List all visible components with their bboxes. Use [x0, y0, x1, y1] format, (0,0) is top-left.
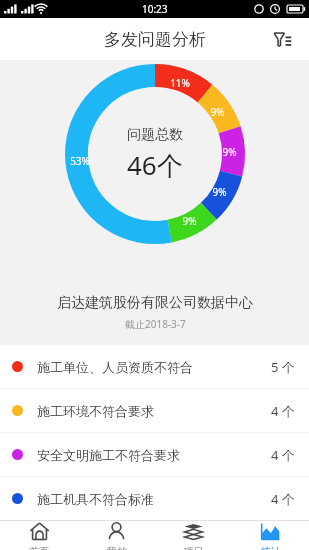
- staticText: 问题总数: [127, 126, 183, 144]
- staticText: 10:23: [142, 2, 168, 16]
- staticText: 4 个: [271, 446, 295, 464]
- staticText: 4 个: [271, 490, 295, 508]
- staticText: 9%: [222, 145, 237, 159]
- staticText: 11%: [170, 76, 190, 90]
- button[interactable]: Filter: [265, 22, 299, 56]
- button[interactable]: 项目: [155, 521, 232, 550]
- button[interactable]: 统计: [232, 521, 309, 550]
- staticText: 53%: [70, 154, 90, 168]
- staticText: 9%: [210, 105, 225, 119]
- button[interactable]: 首页: [0, 521, 78, 550]
- staticText: 施工单位、人员资质不符合: [37, 359, 193, 375]
- button[interactable]: 施工环境不符合要求: [0, 389, 309, 432]
- staticText: 9%: [212, 185, 227, 199]
- button[interactable]: 我的: [78, 521, 155, 550]
- button[interactable]: 施工单位、人员资质不符合: [0, 345, 309, 388]
- button[interactable]: 安全文明施工不符合要求: [0, 433, 309, 476]
- staticText: 启达建筑股份有限公司数据中心: [57, 294, 253, 312]
- staticText: 截止2018-3-7: [125, 317, 186, 331]
- staticText: 安全文明施工不符合要求: [37, 447, 180, 463]
- staticText: 项目: [184, 545, 204, 550]
- staticText: 46个: [127, 147, 183, 183]
- button[interactable]: 施工机具不符合标准: [0, 477, 309, 520]
- staticText: 统计: [261, 545, 281, 550]
- staticText: 9%: [182, 214, 197, 228]
- staticText: 5 个: [271, 358, 295, 376]
- staticText: 施工环境不符合要求: [37, 403, 154, 419]
- staticText: 多发问题分析: [104, 29, 206, 50]
- staticText: 4 个: [271, 402, 295, 420]
- staticText: 首页: [29, 545, 49, 550]
- staticText: 施工机具不符合标准: [37, 491, 154, 507]
- staticText: 我的: [107, 545, 127, 550]
